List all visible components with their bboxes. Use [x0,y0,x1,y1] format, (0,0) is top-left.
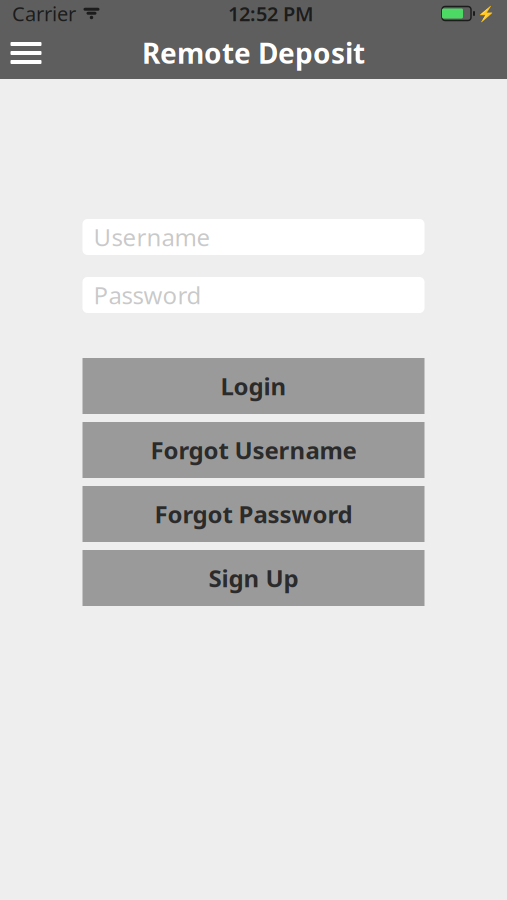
button[interactable]: Sign Up [82,550,424,606]
staticText: Username [93,221,210,253]
staticText: Forgot Username [150,434,356,466]
button[interactable]: Forgot Username [82,422,424,478]
button[interactable]: Login [82,358,424,414]
staticText: Login [220,370,286,402]
staticText: Remote Deposit [142,34,365,72]
staticText: 12:52 PM [228,0,314,27]
staticText: Sign Up [208,562,298,594]
button[interactable]: Menu [0,27,52,79]
staticText: ⚡ [477,5,495,22]
staticText: Password [93,279,201,311]
staticText: Forgot Password [154,498,352,530]
staticText: Carrier [12,0,76,27]
button[interactable]: Forgot Password [82,486,424,542]
